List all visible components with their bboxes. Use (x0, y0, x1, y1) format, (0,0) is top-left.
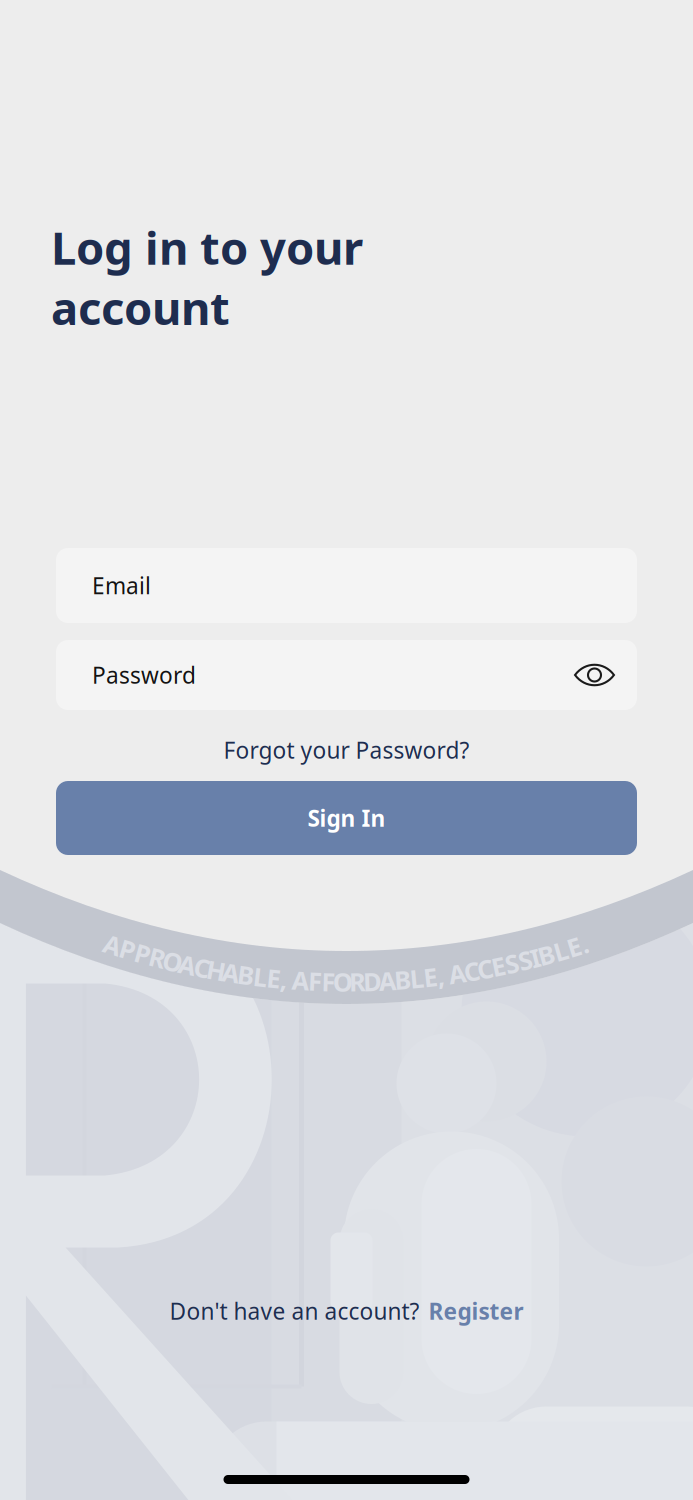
staticText: H (207, 953, 226, 987)
staticText: E (567, 930, 581, 964)
staticText: Email (92, 570, 151, 600)
staticText: Password (92, 660, 196, 690)
staticText: R (149, 941, 166, 974)
staticText: . (581, 927, 588, 960)
staticText: , (437, 959, 444, 993)
staticText: Log in to your account (51, 217, 363, 337)
staticText: L (554, 934, 568, 968)
staticText: S (505, 946, 519, 980)
staticText: Sign In (307, 803, 385, 833)
button[interactable]: Email (56, 548, 637, 623)
staticText: L (253, 960, 267, 993)
staticText: Don't have an account? (169, 1296, 419, 1326)
staticText: C (464, 954, 480, 988)
staticText (287, 963, 294, 996)
staticText: C (477, 952, 493, 986)
staticText: D (363, 964, 382, 998)
staticText: E (423, 960, 437, 994)
staticText: Forgot your Password? (223, 735, 469, 765)
staticText: C (194, 951, 210, 984)
button[interactable]: Password (56, 640, 637, 710)
staticText: R (349, 965, 366, 998)
staticText: A (179, 948, 197, 981)
button[interactable]: Forgot your Password? (0, 731, 693, 769)
staticText: S (518, 943, 532, 977)
staticText: E (491, 949, 505, 983)
staticText: L (410, 962, 424, 995)
staticText: O (163, 944, 183, 978)
staticText: E (267, 961, 281, 995)
staticText: O (333, 965, 353, 998)
staticText: B (238, 958, 255, 992)
staticText: A (292, 963, 310, 997)
staticText: A (379, 964, 397, 997)
staticText: A (222, 956, 240, 989)
staticText: B (538, 938, 555, 971)
button[interactable]: Register (428, 1296, 523, 1326)
staticText: , (280, 962, 287, 996)
button[interactable]: Sign In (56, 781, 637, 855)
staticText: F (308, 964, 322, 998)
staticText: P (120, 933, 136, 966)
staticText: Register (428, 1296, 523, 1326)
staticText: A (448, 957, 466, 990)
staticText: A (104, 928, 122, 962)
staticText: I (530, 941, 540, 974)
staticText: P (135, 937, 151, 970)
button[interactable]: Show password (574, 660, 615, 690)
staticText: B (394, 963, 411, 996)
staticText: F (321, 965, 335, 998)
